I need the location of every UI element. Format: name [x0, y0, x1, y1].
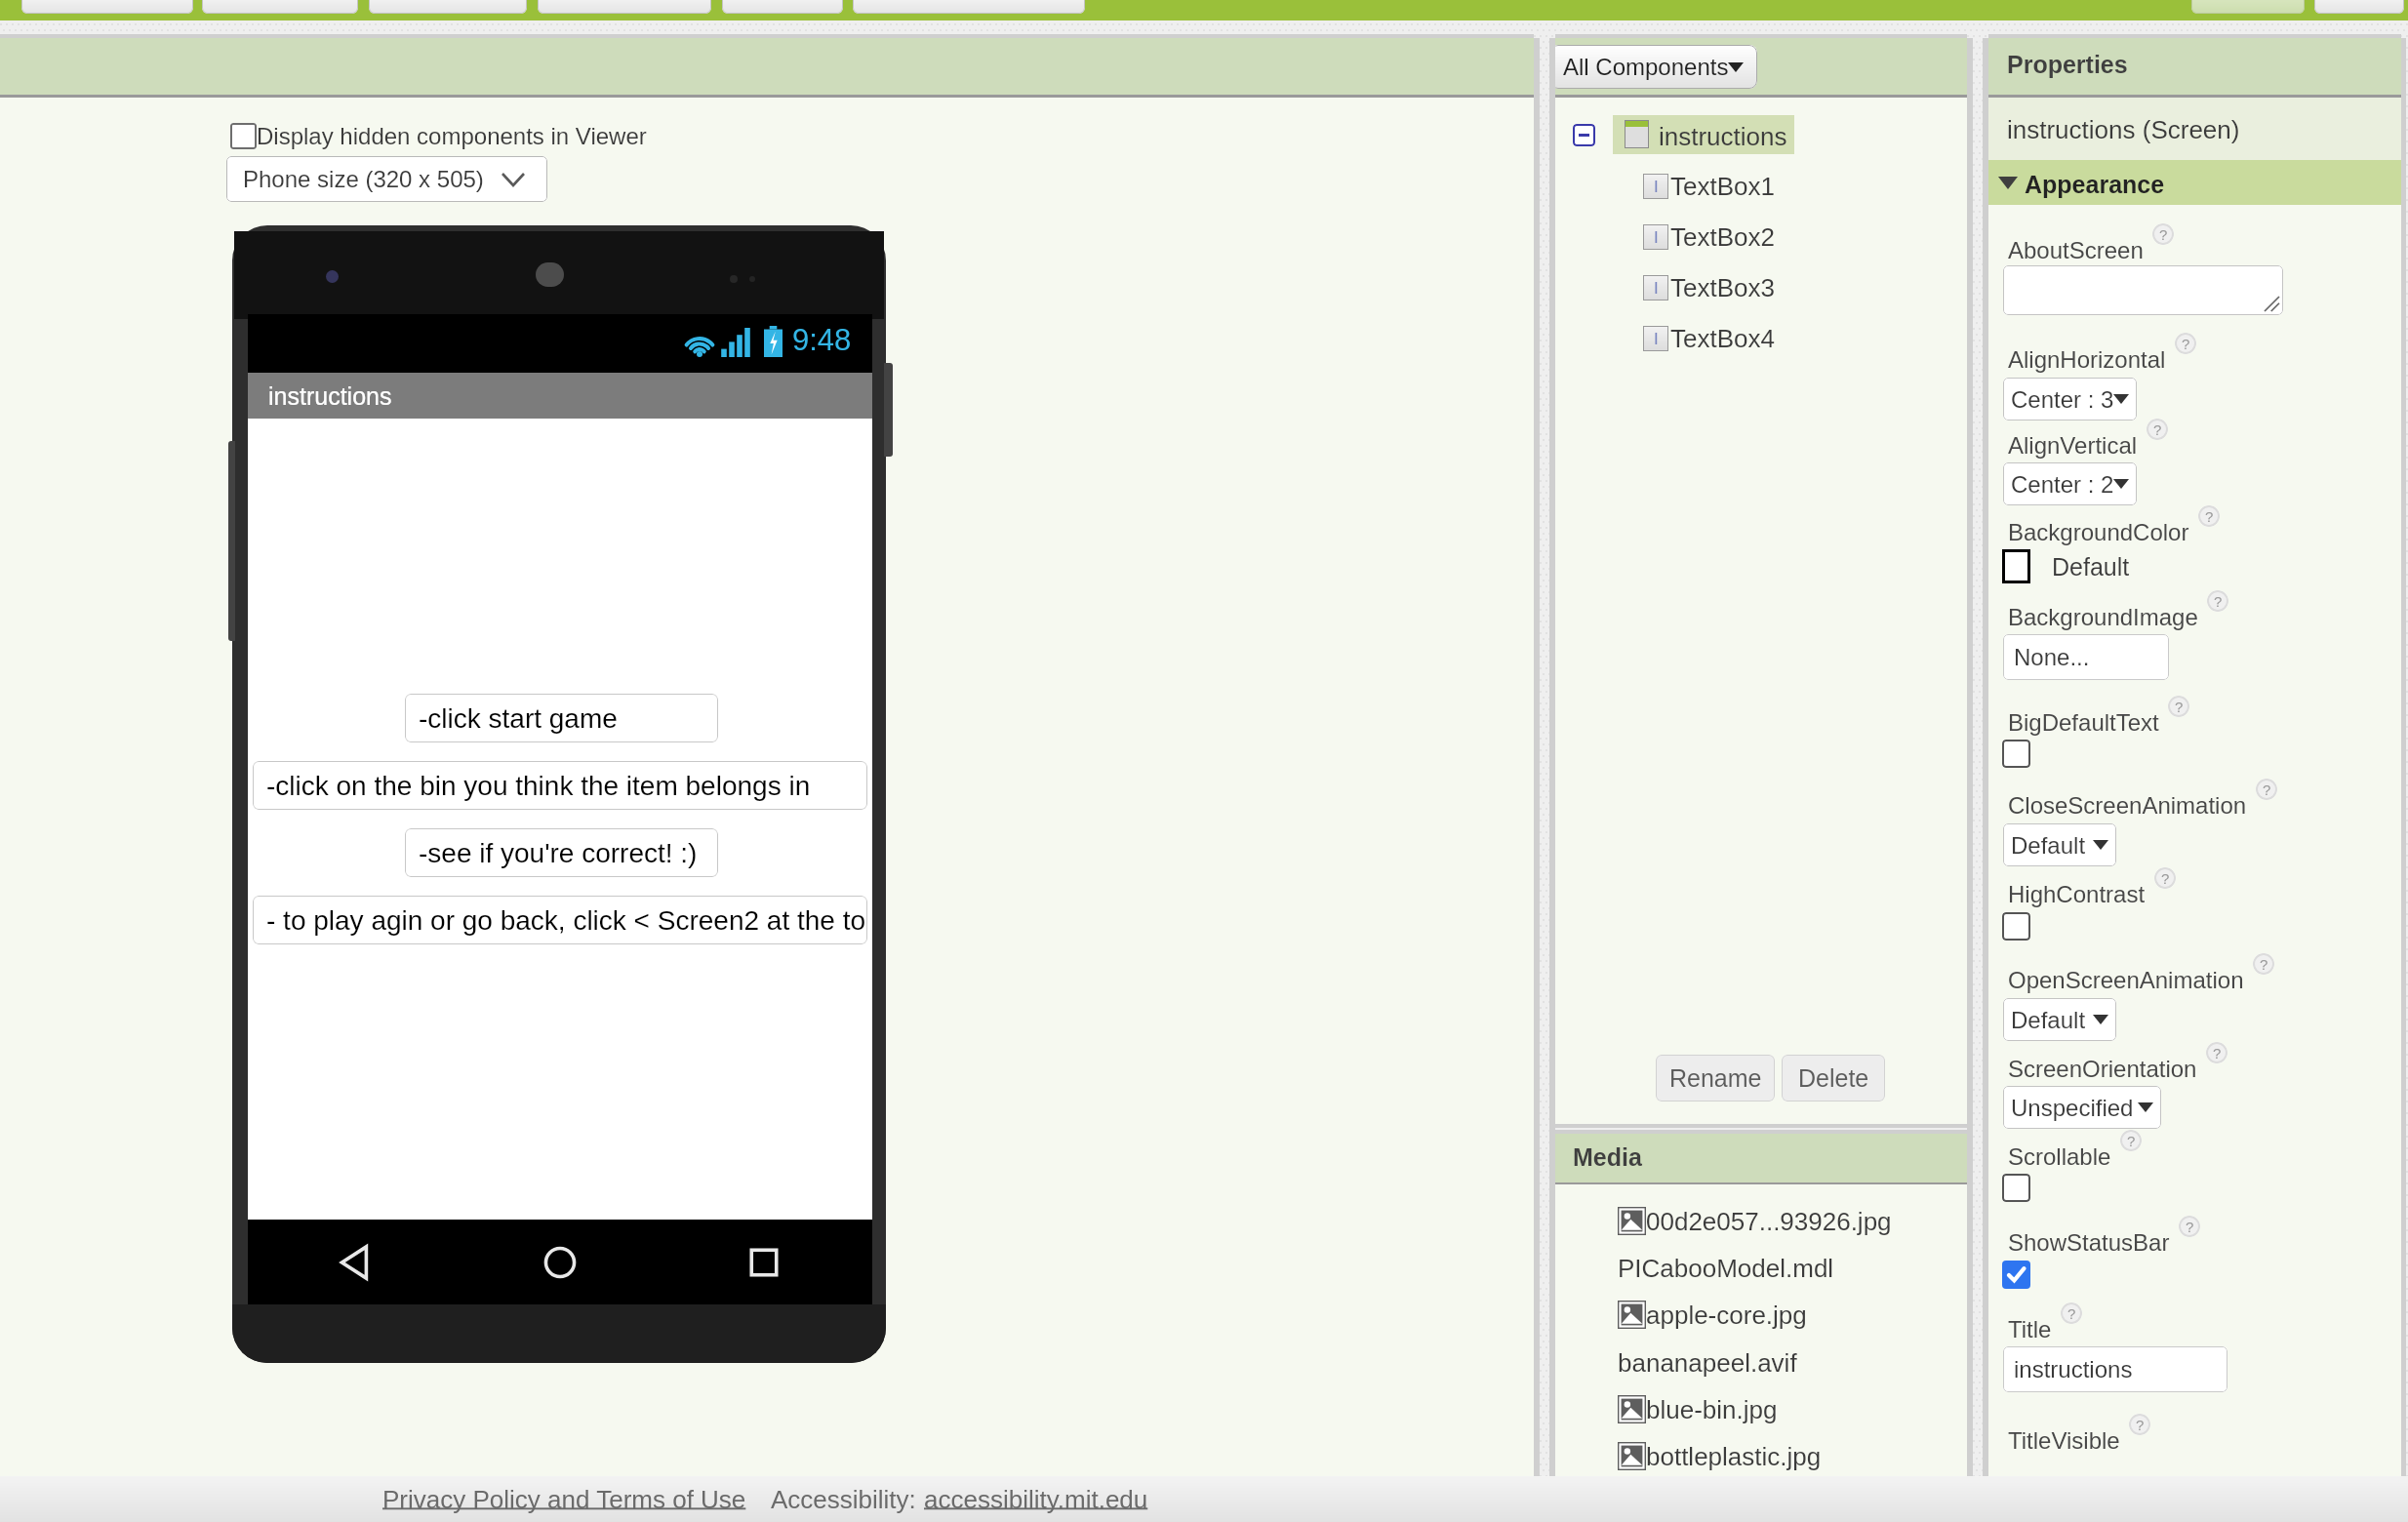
button[interactable]: I	[1643, 273, 1775, 301]
button[interactable]: - to play agin or go back, click < Scree…	[253, 896, 867, 944]
button[interactable]: Toolbar action	[538, 0, 711, 14]
button[interactable]: Phone size (320 x 505)	[226, 156, 547, 202]
button[interactable]: Display hidden components in Viewer	[230, 123, 257, 149]
button[interactable]: Help	[2168, 696, 2189, 717]
staticText: Title	[2008, 1316, 2052, 1342]
button[interactable]: Back	[331, 1237, 381, 1288]
button[interactable]: -click start game	[405, 694, 718, 742]
staticText: AlignVertical	[2008, 432, 2138, 459]
staticText: None...	[2014, 644, 2090, 670]
button[interactable]: Help	[2154, 867, 2176, 889]
staticText: Center : 3	[2011, 386, 2114, 413]
button[interactable]: AboutScreen field	[2003, 265, 2283, 315]
button[interactable]: Delete	[1782, 1055, 1885, 1101]
button[interactable]: Help	[2179, 1216, 2200, 1237]
staticText: TextBox4	[1670, 324, 1775, 352]
button[interactable]: I	[1643, 172, 1775, 200]
button[interactable]: Help	[2152, 223, 2174, 245]
button[interactable]: Default	[2003, 998, 2116, 1041]
button[interactable]: Help	[2147, 419, 2168, 440]
staticText: BackgroundImage	[2008, 604, 2198, 630]
staticText: Rename	[1669, 1064, 1762, 1092]
button[interactable]: apple-core.jpg	[1618, 1301, 1807, 1329]
staticText: apple-core.jpg	[1646, 1301, 1807, 1329]
button[interactable]: Toolbar action	[202, 0, 358, 14]
staticText: blue-bin.jpg	[1646, 1395, 1778, 1423]
staticText: instructions	[2014, 1356, 2133, 1382]
staticText: AlignHorizontal	[2008, 346, 2166, 373]
button[interactable]: Toggle	[2002, 1261, 2030, 1289]
button[interactable]: Center : 2	[2003, 462, 2137, 505]
staticText: PICabooModel.mdl	[1618, 1254, 1834, 1282]
button[interactable]: Designer	[2191, 0, 2305, 14]
staticText: I	[1654, 279, 1659, 298]
button[interactable]: Help	[2129, 1414, 2150, 1435]
button[interactable]: None...	[2003, 634, 2169, 680]
button[interactable]: Toolbar action	[21, 0, 193, 14]
button[interactable]: blue-bin.jpg	[1618, 1395, 1778, 1423]
staticText: ?	[2260, 956, 2268, 973]
button[interactable]: Help	[2120, 1130, 2142, 1151]
staticText: BigDefaultText	[2008, 709, 2159, 736]
staticText: bananapeel.avif	[1618, 1348, 1797, 1377]
button[interactable]: Help	[2198, 505, 2220, 527]
button[interactable]: I	[1643, 324, 1775, 352]
staticText: ?	[2213, 1045, 2222, 1061]
staticText: ?	[2127, 1133, 2136, 1149]
staticText: ?	[2159, 226, 2168, 243]
button[interactable]: Toolbar action	[369, 0, 527, 14]
button[interactable]: Toggle	[2002, 1174, 2030, 1202]
button[interactable]: Rename	[1656, 1055, 1775, 1101]
staticText: OpenScreenAnimation	[2008, 967, 2244, 993]
button[interactable]: Toggle	[2002, 912, 2030, 941]
button[interactable]: instructions	[2003, 1346, 2227, 1392]
staticText: Scrollable	[2008, 1143, 2111, 1170]
button[interactable]: Toolbar action	[853, 0, 1085, 14]
staticText: Media	[1573, 1143, 1642, 1171]
staticText: ?	[2263, 781, 2271, 798]
staticText: I	[1654, 228, 1659, 247]
button[interactable]: 00d2e057...93926.jpg	[1618, 1207, 1892, 1235]
staticText: ?	[2067, 1305, 2076, 1322]
button[interactable]: Help	[2206, 1042, 2227, 1063]
button[interactable]: I	[1643, 222, 1775, 251]
staticText: instructions (Screen)	[2007, 115, 2240, 143]
staticText: Delete	[1798, 1064, 1869, 1092]
button[interactable]: bottleplastic.jpg	[1618, 1442, 1822, 1470]
button[interactable]: Collapse	[1573, 124, 1595, 146]
button[interactable]: Center : 3	[2003, 378, 2137, 421]
staticText: ?	[2136, 1417, 2145, 1433]
button[interactable]: bananapeel.avif	[1618, 1348, 1797, 1377]
staticText: Accessibility:	[771, 1485, 924, 1513]
staticText: All Components	[1563, 54, 1729, 80]
button[interactable]: Help	[2175, 333, 2196, 354]
button[interactable]: -see if you're correct! :)	[405, 828, 718, 877]
button[interactable]: Recents	[739, 1237, 789, 1288]
staticText: TextBox2	[1670, 222, 1775, 251]
staticText: ?	[2175, 699, 2184, 715]
button[interactable]: BackgroundColor	[2002, 549, 2130, 583]
button[interactable]: Privacy Policy and Terms of Use	[382, 1485, 746, 1513]
button[interactable]: Help	[2256, 779, 2277, 800]
button[interactable]: Unspecified	[2003, 1086, 2161, 1129]
button[interactable]: Help	[2253, 953, 2274, 975]
button[interactable]: All Components	[1550, 45, 1757, 89]
staticText: TitleVisible	[2008, 1427, 2120, 1454]
staticText: ?	[2161, 870, 2170, 887]
button[interactable]: accessibility.mit.edu	[924, 1485, 1148, 1513]
button[interactable]: Home	[535, 1237, 585, 1288]
staticText: I	[1654, 330, 1659, 348]
button[interactable]: Default	[2003, 823, 2116, 866]
button[interactable]: PICabooModel.mdl	[1618, 1254, 1834, 1282]
staticText: I	[1654, 178, 1659, 196]
staticText: bottleplastic.jpg	[1646, 1442, 1822, 1470]
button[interactable]: Blocks	[2314, 0, 2404, 14]
button[interactable]: Toolbar action	[722, 0, 843, 14]
staticText: Properties	[2007, 51, 2128, 78]
button[interactable]: Help	[2207, 590, 2228, 612]
button[interactable]: Toggle	[2002, 740, 2030, 768]
button[interactable]: -click on the bin you think the item bel…	[253, 761, 867, 810]
staticText: Unspecified	[2011, 1095, 2134, 1121]
staticText: ?	[2182, 336, 2190, 352]
button[interactable]: Help	[2061, 1302, 2082, 1324]
